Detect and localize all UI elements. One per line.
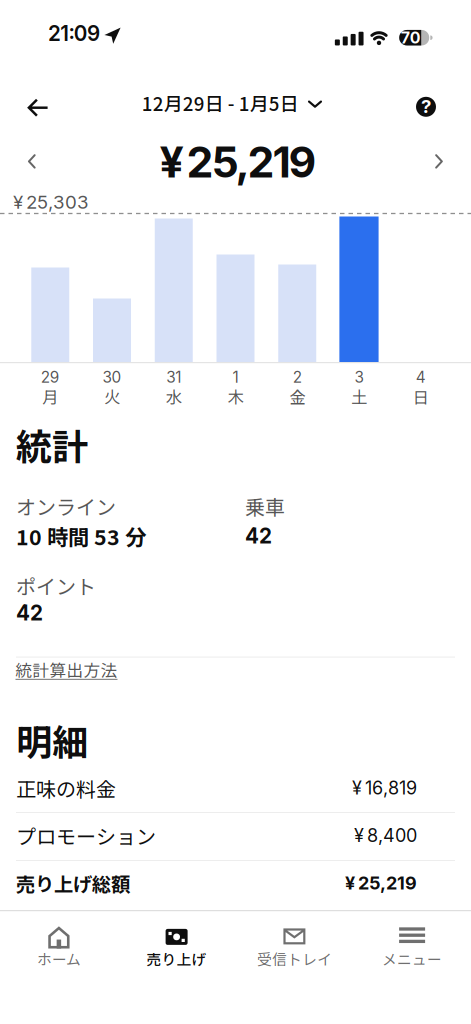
staticText: ホーム bbox=[37, 948, 81, 969]
button[interactable]: 12月29日 - 1月5日 bbox=[142, 89, 322, 116]
staticText: 30 bbox=[102, 368, 121, 386]
staticText: 火 bbox=[104, 385, 120, 408]
staticText: 21:09 bbox=[48, 21, 100, 46]
button[interactable]: Next week bbox=[425, 144, 453, 179]
staticText: ¥ 8,400 bbox=[354, 825, 417, 846]
staticText: 乗車 bbox=[245, 491, 285, 520]
staticText: 受信トレイ bbox=[257, 948, 332, 969]
staticText: 水 bbox=[166, 385, 182, 408]
staticText: 統計算出方法 bbox=[15, 657, 117, 681]
staticText: 31 bbox=[166, 368, 181, 386]
staticText: 70 bbox=[401, 28, 421, 47]
staticText: ¥ 16,819 bbox=[352, 777, 417, 799]
staticText: プロモーション bbox=[16, 821, 156, 850]
staticText: 3 bbox=[354, 368, 363, 386]
staticText: ¥ 25,303 bbox=[13, 191, 89, 213]
staticText: 木 bbox=[227, 385, 243, 408]
staticText: 明細 bbox=[16, 714, 88, 766]
staticText: 29 bbox=[41, 368, 60, 386]
staticText: 月 bbox=[42, 385, 58, 408]
staticText: 日 bbox=[413, 385, 429, 408]
staticText: 2 bbox=[293, 368, 302, 386]
button[interactable]: メニュー bbox=[354, 915, 471, 981]
button[interactable]: 統計算出方法 bbox=[15, 651, 117, 687]
staticText: 正味の料金 bbox=[16, 773, 116, 802]
staticText: ポイント bbox=[16, 571, 96, 600]
staticText: 42 bbox=[16, 600, 43, 625]
staticText: ¥ 25,219 bbox=[159, 136, 316, 188]
button[interactable]: Back bbox=[17, 88, 59, 128]
button[interactable]: ホーム bbox=[0, 915, 117, 981]
staticText: 12月29日 - 1月5日 bbox=[142, 89, 299, 116]
staticText: 金 bbox=[289, 385, 305, 408]
staticText: 統計 bbox=[16, 418, 88, 470]
staticText: 土 bbox=[351, 385, 367, 408]
button[interactable]: 売り上げ bbox=[118, 915, 235, 981]
staticText: 売り上げ総額 bbox=[16, 869, 130, 897]
staticText: 42 bbox=[245, 523, 272, 548]
button[interactable]: Help bbox=[408, 87, 444, 126]
staticText: メニュー bbox=[382, 948, 442, 969]
staticText: 4 bbox=[416, 368, 426, 386]
button[interactable]: 受信トレイ bbox=[236, 915, 353, 981]
staticText: 売り上げ bbox=[147, 948, 207, 969]
staticText: 1 bbox=[232, 368, 238, 386]
button[interactable]: Previous week bbox=[18, 144, 46, 179]
staticText: 10 時間 53 分 bbox=[16, 521, 146, 551]
staticText: ? bbox=[421, 95, 431, 118]
staticText: オンライン bbox=[16, 491, 116, 520]
staticText: ¥ 25,219 bbox=[345, 872, 417, 894]
